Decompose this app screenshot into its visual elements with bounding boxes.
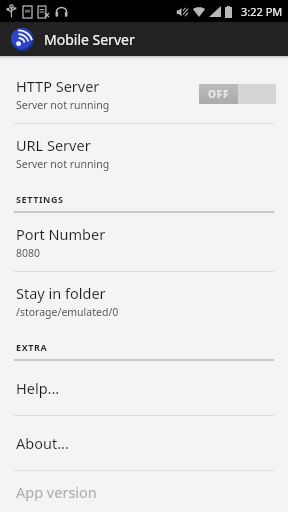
button[interactable]: URL Server [0,124,288,182]
staticText: /storage/emulated/0 [16,305,119,319]
button[interactable]: Stay in folder [0,272,288,330]
staticText: Port Number [16,224,106,244]
button[interactable]: HTTP Server [0,65,288,123]
button[interactable]: Help... [0,361,288,415]
staticText: Server not running [16,98,110,112]
button[interactable]: About... [0,416,288,470]
staticText: OFF [208,87,230,101]
button[interactable]: Port Number [0,213,288,271]
staticText: App version [16,482,97,501]
staticText: About... [16,433,69,453]
button[interactable]: Mobile Server [0,22,288,56]
staticText: Mobile Server [44,30,135,49]
staticText: 8080 [16,246,41,260]
staticText: URL Server [16,135,91,155]
staticText: EXTRA [16,341,48,353]
staticText: Stay in folder [16,283,106,303]
staticText: Help... [16,378,60,398]
button[interactable]: HTTP Server off [199,84,276,104]
staticText: 3:22 PM [241,4,283,19]
staticText: SETTINGS [16,193,64,205]
staticText: Server not running [16,157,110,171]
staticText: HTTP Server [16,76,100,96]
button[interactable]: App version [0,471,288,512]
